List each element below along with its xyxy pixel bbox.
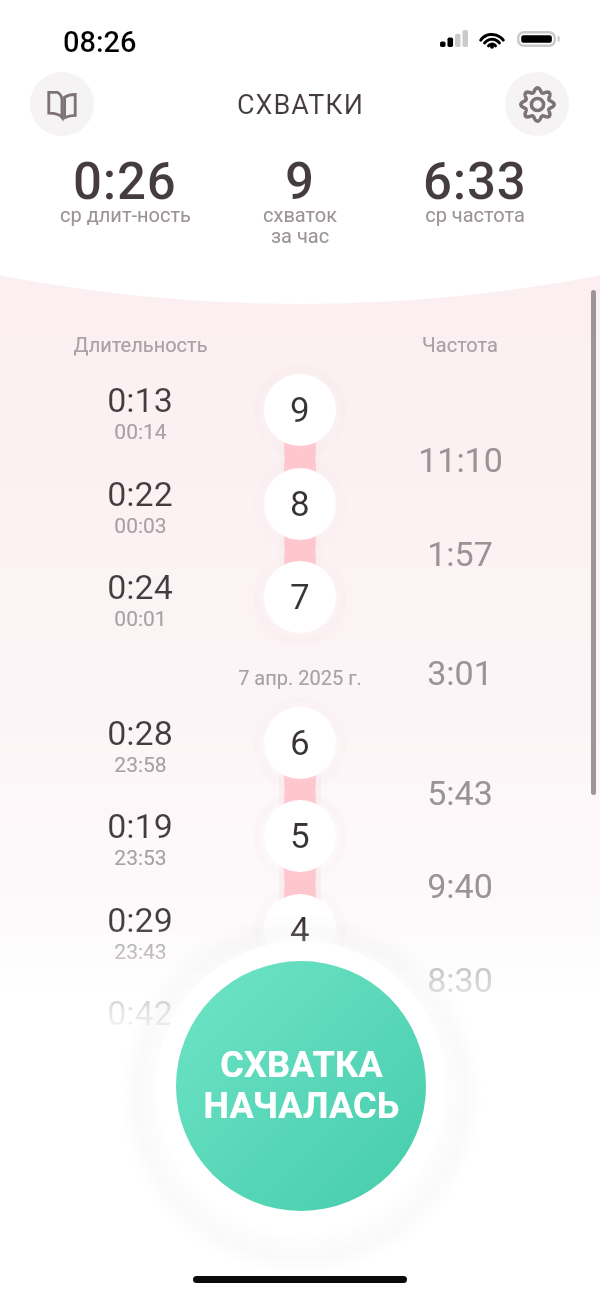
staticText: 6:33 [423,152,527,212]
staticText: 0:42 [107,993,173,1033]
button[interactable]: Settings [505,72,569,136]
staticText: 23:58 [114,753,167,778]
button[interactable]: СХВАТКА НАЧАЛАСЬ [176,961,426,1211]
staticText: 5 [290,816,310,857]
staticText: схваток за час [263,203,337,248]
button[interactable]: 5 [264,800,336,872]
staticText: СХВАТКИ [237,89,364,121]
staticText: 23:43 [114,940,167,965]
staticText: 9:40 [427,866,493,906]
staticText: Длительность [73,333,208,356]
staticText: ср длит-ность [60,203,191,226]
staticText: 9 [290,390,310,431]
staticText: 0:19 [107,806,173,846]
button[interactable]: 9 [264,374,336,446]
staticText: 23:53 [114,846,167,871]
staticText: 0:28 [107,713,173,753]
staticText: 7 апр. 2025 г. [238,666,362,689]
staticText: 6 [290,723,310,764]
staticText: 0:26 [73,152,177,212]
button[interactable]: Guide [30,72,94,136]
staticText: 3:01 [427,653,493,693]
button[interactable]: 4 [264,894,336,966]
staticText: 1:57 [427,534,493,574]
staticText: 00:03 [114,514,167,539]
staticText: 00:01 [114,607,167,632]
staticText: 08:26 [63,25,137,59]
staticText: 0:24 [107,567,173,607]
staticText: 11:10 [418,440,503,480]
staticText: 8 [290,484,310,525]
button[interactable]: 8 [264,468,336,540]
staticText: Частота [422,333,498,356]
staticText: 8:30 [427,960,493,1000]
staticText: 7 [290,577,310,618]
button[interactable]: 3 [264,987,336,1059]
staticText: 0:13 [107,380,173,420]
staticText: ср частота [425,203,525,226]
staticText: 4 [290,910,310,951]
staticText: 00:14 [114,420,167,445]
button[interactable]: 6 [264,707,336,779]
staticText: СХВАТКА НАЧАЛАСЬ [203,1044,400,1127]
staticText: 0:22 [107,474,173,514]
staticText: 9 [285,152,315,212]
button[interactable]: 7 [264,561,336,633]
staticText: 0:29 [107,900,173,940]
staticText: 5:43 [427,773,493,813]
